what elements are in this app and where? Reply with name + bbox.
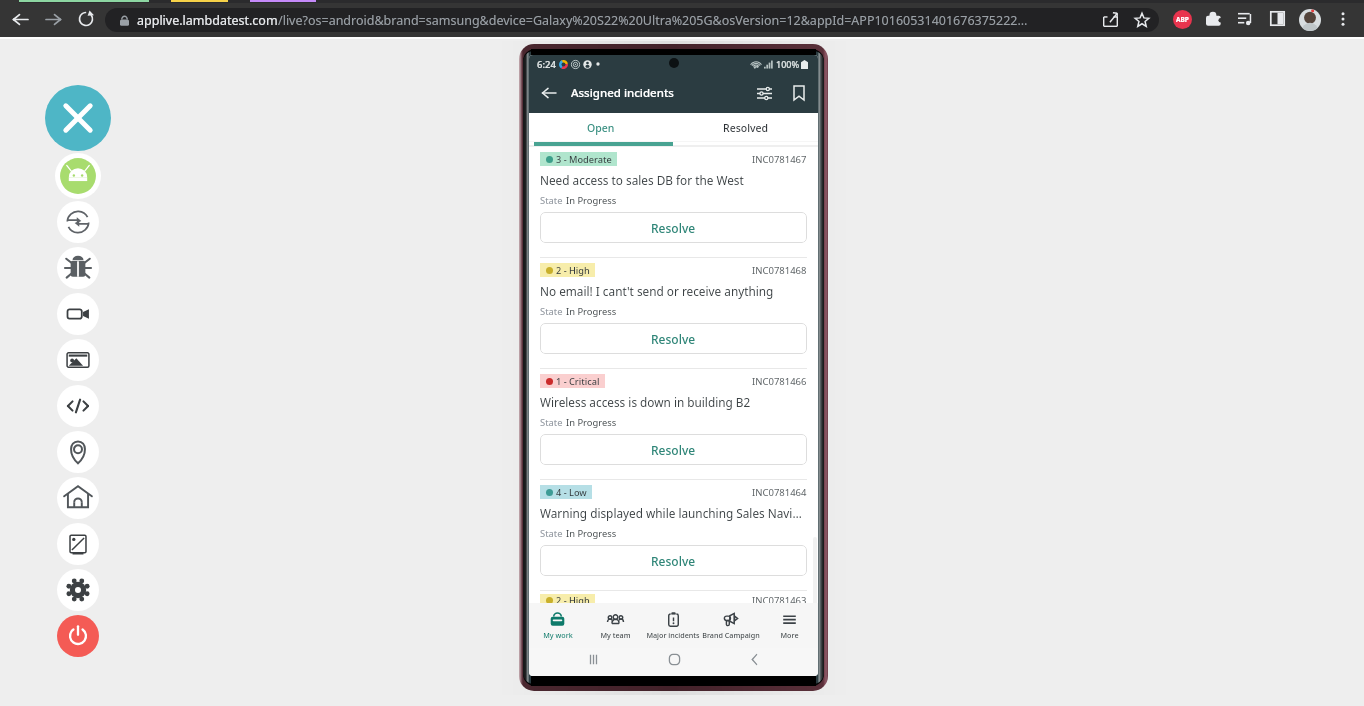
button[interactable]: Developer tools xyxy=(57,385,99,427)
staticText: INC0781468 xyxy=(752,264,807,277)
button[interactable]: My team xyxy=(586,603,644,648)
button[interactable]: Set location xyxy=(57,431,99,473)
staticText: 4 - Low xyxy=(556,486,587,499)
staticText: Brand Campaign xyxy=(702,630,760,640)
staticText: INC0781463 xyxy=(752,594,807,606)
staticText: Open xyxy=(587,121,615,135)
button[interactable]: Media controls xyxy=(1230,3,1261,34)
staticText: Resolve xyxy=(651,442,696,458)
button[interactable]: Home xyxy=(57,477,99,519)
button[interactable]: AdBlock Plus xyxy=(1173,10,1192,29)
button[interactable]: 2 - High xyxy=(529,258,818,369)
button[interactable]: applive.lambdatest.com xyxy=(105,8,1159,32)
staticText: State xyxy=(540,527,563,540)
button[interactable]: Back xyxy=(4,3,36,35)
button[interactable]: Back xyxy=(748,653,761,666)
button[interactable]: Resolve xyxy=(540,434,807,465)
staticText: 2 - High xyxy=(556,264,590,277)
button[interactable]: Record video xyxy=(57,293,99,335)
button[interactable]: Network throttling xyxy=(57,523,99,565)
button[interactable]: More xyxy=(760,603,818,648)
button[interactable]: Home xyxy=(668,653,681,666)
staticText: My work xyxy=(543,630,573,640)
button[interactable]: Stop session xyxy=(57,615,99,657)
staticText: INC0781466 xyxy=(752,375,807,388)
button[interactable]: Resolved xyxy=(673,113,818,142)
staticText: Need access to sales DB for the West xyxy=(540,172,744,188)
staticText: Assigned incidents xyxy=(571,85,674,101)
button[interactable]: 1 - Critical xyxy=(529,369,818,480)
button[interactable]: Report a bug xyxy=(57,247,99,289)
staticText: More xyxy=(780,630,799,640)
button[interactable]: Close session xyxy=(45,85,111,151)
button[interactable]: Screenshot xyxy=(57,339,99,381)
button[interactable]: Forward xyxy=(37,3,69,35)
staticText: Major incidents xyxy=(646,630,700,640)
staticText: In Progress xyxy=(566,194,617,207)
button[interactable]: My work xyxy=(529,603,586,648)
button[interactable]: 3 - Moderate xyxy=(529,147,818,258)
button[interactable]: Share xyxy=(1094,3,1127,36)
button[interactable]: Bookmarks xyxy=(781,75,817,111)
button[interactable]: Back xyxy=(529,73,569,113)
staticText: 6:24 xyxy=(537,58,556,71)
button[interactable]: Extensions xyxy=(1198,3,1229,34)
button[interactable]: Resolve xyxy=(540,545,807,576)
staticText: INC0781464 xyxy=(752,486,807,499)
staticText: Resolve xyxy=(651,553,696,569)
staticText: 2 - High xyxy=(556,594,590,606)
button[interactable]: Recents xyxy=(587,653,600,666)
staticText: In Progress xyxy=(566,305,617,318)
staticText: Wireless access is down in building B2 xyxy=(540,394,751,410)
button[interactable]: 4 - Low xyxy=(529,480,818,591)
staticText: INC0781467 xyxy=(752,153,807,166)
button[interactable]: Rotate device xyxy=(57,201,99,243)
staticText: 100% xyxy=(776,58,800,70)
button[interactable]: Filter xyxy=(747,76,781,110)
button[interactable]: Brand Campaign xyxy=(702,603,760,648)
staticText: Resolve xyxy=(651,331,696,347)
button[interactable]: Major incidents xyxy=(644,603,702,648)
button[interactable]: Bookmark page xyxy=(1125,3,1158,36)
button[interactable]: More options xyxy=(1327,3,1358,34)
staticText: No email! I cant't send or receive anyth… xyxy=(540,283,774,299)
staticText: In Progress xyxy=(566,527,617,540)
button[interactable]: Profile xyxy=(1299,9,1321,31)
button[interactable]: Android device xyxy=(55,153,101,199)
staticText: Resolve xyxy=(651,220,696,236)
staticText: State xyxy=(540,194,563,207)
staticText: 1 - Critical xyxy=(556,375,600,388)
button[interactable]: Open xyxy=(529,113,673,142)
staticText: Warning displayed while launching Sales … xyxy=(540,505,807,521)
button[interactable]: Settings xyxy=(57,569,99,611)
staticText: 3 - Moderate xyxy=(556,153,612,166)
staticText: Resolved xyxy=(723,121,769,135)
staticText: /live?os=android&brand=samsung&device=Ga… xyxy=(278,12,1028,29)
staticText: applive.lambdatest.com xyxy=(137,12,278,29)
button[interactable]: Split screen xyxy=(1262,3,1293,34)
staticText: My team xyxy=(600,630,631,640)
staticText: State xyxy=(540,305,563,318)
button[interactable]: Resolve xyxy=(540,212,807,243)
button[interactable]: 2 - High xyxy=(529,591,818,603)
staticText: State xyxy=(540,416,563,429)
button[interactable]: Reload xyxy=(70,3,102,35)
button[interactable]: Resolve xyxy=(540,323,807,354)
staticText: In Progress xyxy=(566,416,617,429)
staticText: ABP xyxy=(1176,15,1189,24)
